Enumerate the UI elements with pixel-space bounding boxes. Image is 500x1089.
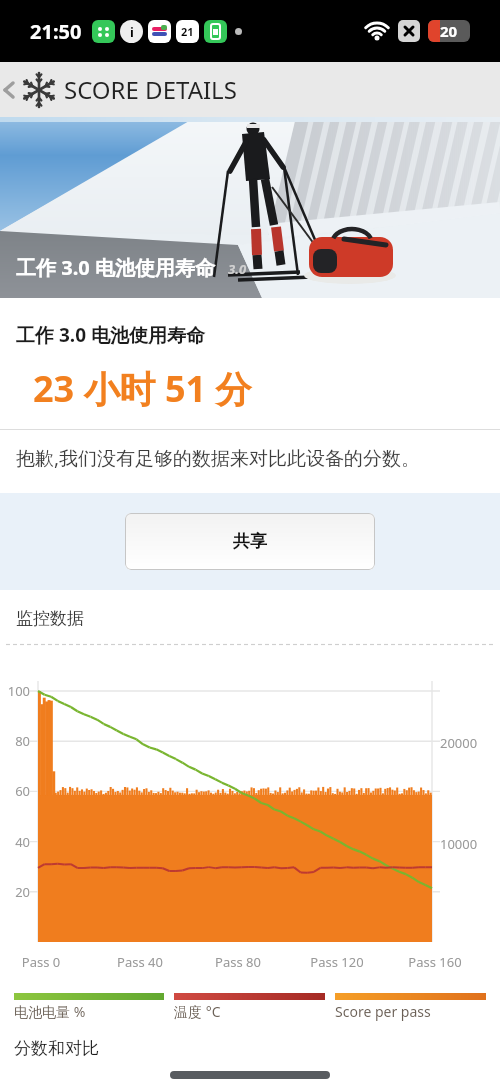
- staticText: SCORE DETAILS: [64, 73, 237, 106]
- button[interactable]: 共享: [125, 513, 375, 570]
- staticText: 10000: [440, 835, 478, 853]
- staticText: Pass 0: [8, 953, 74, 971]
- button[interactable]: SCORE DETAILS: [0, 62, 500, 117]
- staticText: 23 小时 51 分: [33, 364, 252, 413]
- staticText: Score per pass: [335, 1002, 431, 1021]
- staticText: 抱歉,我们没有足够的数据来对比此设备的分数。: [16, 445, 421, 471]
- staticText: Pass 160: [402, 953, 468, 971]
- staticText: 3.0: [228, 260, 247, 278]
- staticText: 20: [440, 21, 458, 41]
- staticText: 电池电量 %: [14, 1002, 86, 1021]
- staticText: 100: [0, 682, 30, 700]
- staticText: 20: [0, 883, 30, 901]
- staticText: Pass 40: [107, 953, 173, 971]
- staticText: 21: [181, 24, 194, 39]
- staticText: 工作 3.0 电池使用寿命: [16, 322, 205, 348]
- staticText: 60: [0, 782, 30, 800]
- staticText: i: [130, 23, 134, 41]
- staticText: 分数和对比: [14, 1038, 99, 1059]
- staticText: Pass 120: [304, 953, 370, 971]
- staticText: 21:50: [30, 18, 82, 45]
- staticText: 40: [0, 833, 30, 851]
- staticText: 80: [0, 732, 30, 750]
- staticText: 共享: [233, 531, 267, 552]
- staticText: 20000: [440, 734, 478, 752]
- staticText: 工作 3.0 电池使用寿命: [16, 254, 215, 281]
- staticText: Pass 80: [205, 953, 271, 971]
- staticText: 温度 °C: [174, 1002, 221, 1021]
- staticText: 监控数据: [16, 608, 84, 629]
